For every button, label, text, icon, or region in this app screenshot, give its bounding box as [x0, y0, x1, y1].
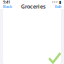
staticText: Back — [3, 4, 12, 9]
staticText: ••• ▮ — [52, 0, 61, 5]
staticText: Groceries — [21, 3, 46, 10]
staticText: Edit — [55, 4, 61, 9]
button[interactable]: Edit — [55, 4, 61, 9]
staticText: 9:41 — [3, 0, 10, 5]
button[interactable]: Back — [3, 4, 12, 9]
